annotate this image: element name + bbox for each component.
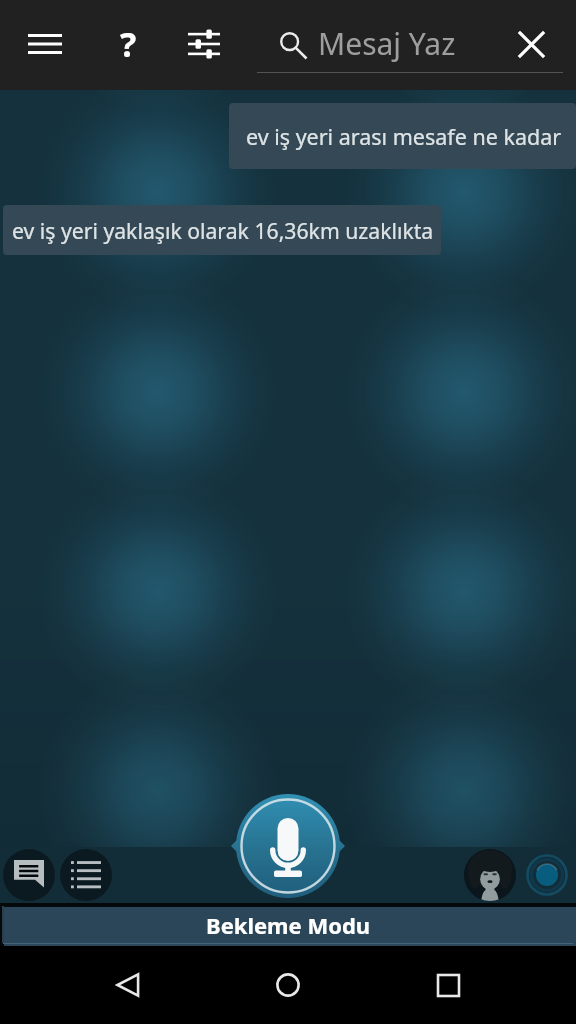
staticText: ev iş yeri yaklaşık olarak 16,36km uzakl… (12, 216, 434, 245)
button[interactable]: Help (100, 16, 156, 72)
staticText: Bekleme Modu (206, 910, 371, 940)
button[interactable]: Microphone (231, 794, 345, 898)
button[interactable]: Mesaj Yaz (257, 12, 563, 78)
staticText: ? (120, 21, 137, 67)
staticText: ev iş yeri arası mesafe ne kadar (246, 122, 562, 151)
button[interactable]: Bekleme Modu (0, 903, 576, 946)
staticText: Mesaj Yaz (318, 23, 456, 64)
button[interactable]: Back (98, 955, 158, 1015)
button[interactable]: Recent apps (418, 955, 478, 1015)
button[interactable]: List (60, 849, 112, 901)
button[interactable]: Settings (176, 16, 232, 72)
button[interactable]: Close (503, 16, 559, 72)
button[interactable]: ev iş yeri yaklaşık olarak 16,36km uzakl… (3, 205, 441, 255)
button[interactable]: ev iş yeri arası mesafe ne kadar (229, 103, 576, 169)
button[interactable]: Home (258, 955, 318, 1015)
button[interactable]: Status indicator (521, 849, 573, 901)
button[interactable]: Messages (3, 849, 55, 901)
button[interactable]: Menu (17, 16, 73, 72)
button[interactable]: Assistant avatar (464, 849, 516, 901)
